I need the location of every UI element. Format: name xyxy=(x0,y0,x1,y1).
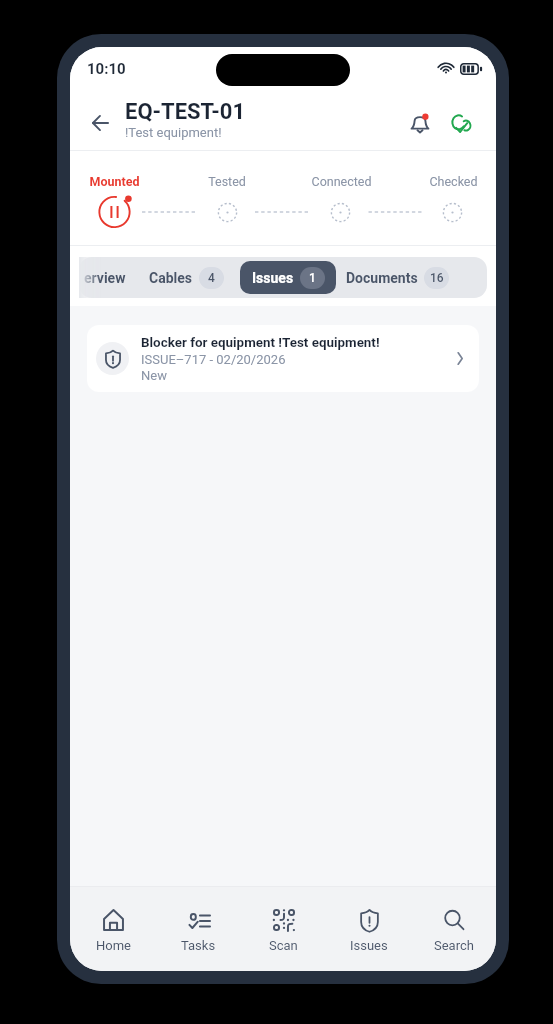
staticText: Scan xyxy=(269,938,298,953)
button[interactable]: Notifications xyxy=(403,106,437,140)
staticText: 1 xyxy=(309,271,316,285)
staticText: 4 xyxy=(208,271,215,285)
button[interactable]: Issues xyxy=(326,886,411,971)
staticText: Search xyxy=(434,938,474,953)
staticText: New xyxy=(141,368,167,383)
button[interactable]: Back xyxy=(83,106,117,140)
button[interactable]: Search xyxy=(411,886,496,971)
staticText: Mounted xyxy=(89,174,140,189)
button[interactable]: Documents xyxy=(340,261,463,294)
button[interactable]: Home xyxy=(70,886,156,971)
button[interactable]: Tasks xyxy=(156,886,241,971)
button[interactable]: Blocker for equipment !Test equipment! xyxy=(87,325,479,392)
staticText: ISSUE–717 - 02/20/2026 xyxy=(141,352,286,367)
staticText: 10:10 xyxy=(87,60,126,78)
staticText: Issues xyxy=(252,270,294,286)
staticText: 16 xyxy=(430,271,444,285)
staticText: Home xyxy=(96,938,131,953)
button[interactable]: Issues xyxy=(240,261,336,294)
staticText: EQ-TEST-01 xyxy=(125,99,246,125)
button[interactable]: Scan xyxy=(241,886,326,971)
button[interactable]: Cables xyxy=(137,261,232,294)
staticText: Tested xyxy=(208,174,246,189)
button[interactable]: erview xyxy=(79,261,137,294)
staticText: Blocker for equipment !Test equipment! xyxy=(141,335,380,351)
staticText: Cables xyxy=(149,270,193,286)
staticText: Tasks xyxy=(181,938,216,953)
staticText: Documents xyxy=(346,270,418,286)
button[interactable]: Sync status xyxy=(444,106,478,140)
staticText: Connected xyxy=(311,174,372,189)
staticText: Issues xyxy=(350,938,388,953)
staticText: !Test equipment! xyxy=(125,125,222,140)
staticText: Checked xyxy=(429,174,478,189)
staticText: erview xyxy=(84,270,126,286)
